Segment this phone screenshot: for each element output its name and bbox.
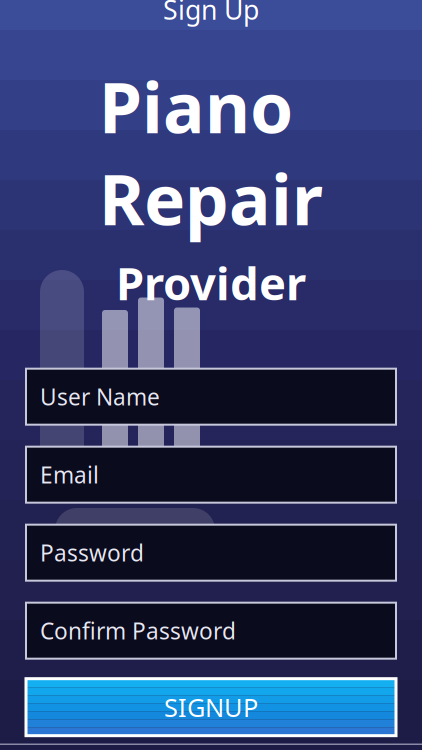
button[interactable]: Confirm Password [26,603,396,659]
staticText: SIGNUP [164,690,258,724]
staticText: Piano Repair [99,60,323,244]
button[interactable]: Password [26,525,396,581]
staticText: Email [40,460,99,490]
staticText: Provider [116,252,306,313]
staticText: Sign Up [163,0,259,27]
button[interactable]: SIGNUP [26,679,396,736]
button[interactable]: User Name [26,369,396,425]
staticText: User Name [40,382,160,412]
staticText: Password [40,538,144,568]
staticText: Confirm Password [40,616,236,646]
button[interactable]: Email [26,447,396,503]
